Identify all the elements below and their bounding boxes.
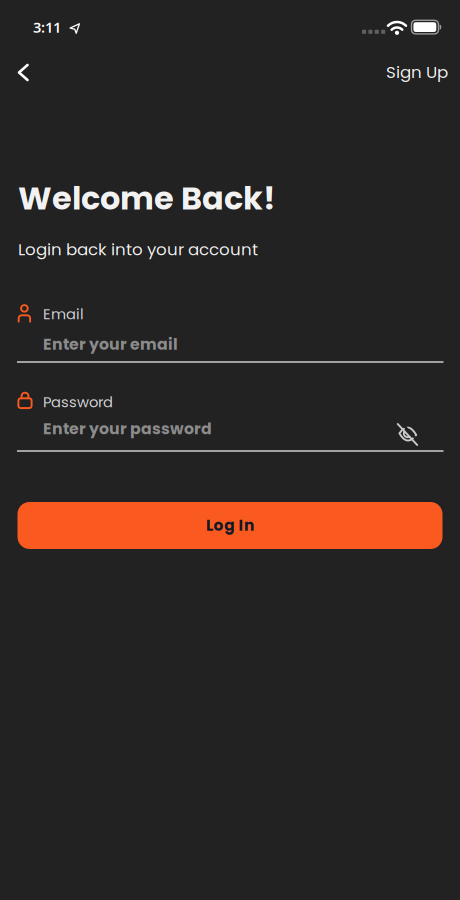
staticText: Login back into your account bbox=[18, 238, 258, 261]
staticText: Enter your email bbox=[43, 333, 178, 355]
staticText: 3:11 bbox=[33, 17, 61, 37]
staticText: Enter your password bbox=[43, 418, 212, 440]
button[interactable]: Sign Up bbox=[386, 61, 448, 84]
staticText: Email bbox=[43, 304, 84, 324]
staticText: Password bbox=[43, 392, 113, 412]
button[interactable]: Log In bbox=[17, 502, 442, 549]
staticText: Log In bbox=[206, 515, 254, 536]
staticText: Sign Up bbox=[386, 61, 448, 84]
staticText: Welcome Back! bbox=[18, 176, 276, 221]
button[interactable]: Back bbox=[1, 50, 45, 94]
button[interactable]: Show password bbox=[385, 411, 429, 455]
